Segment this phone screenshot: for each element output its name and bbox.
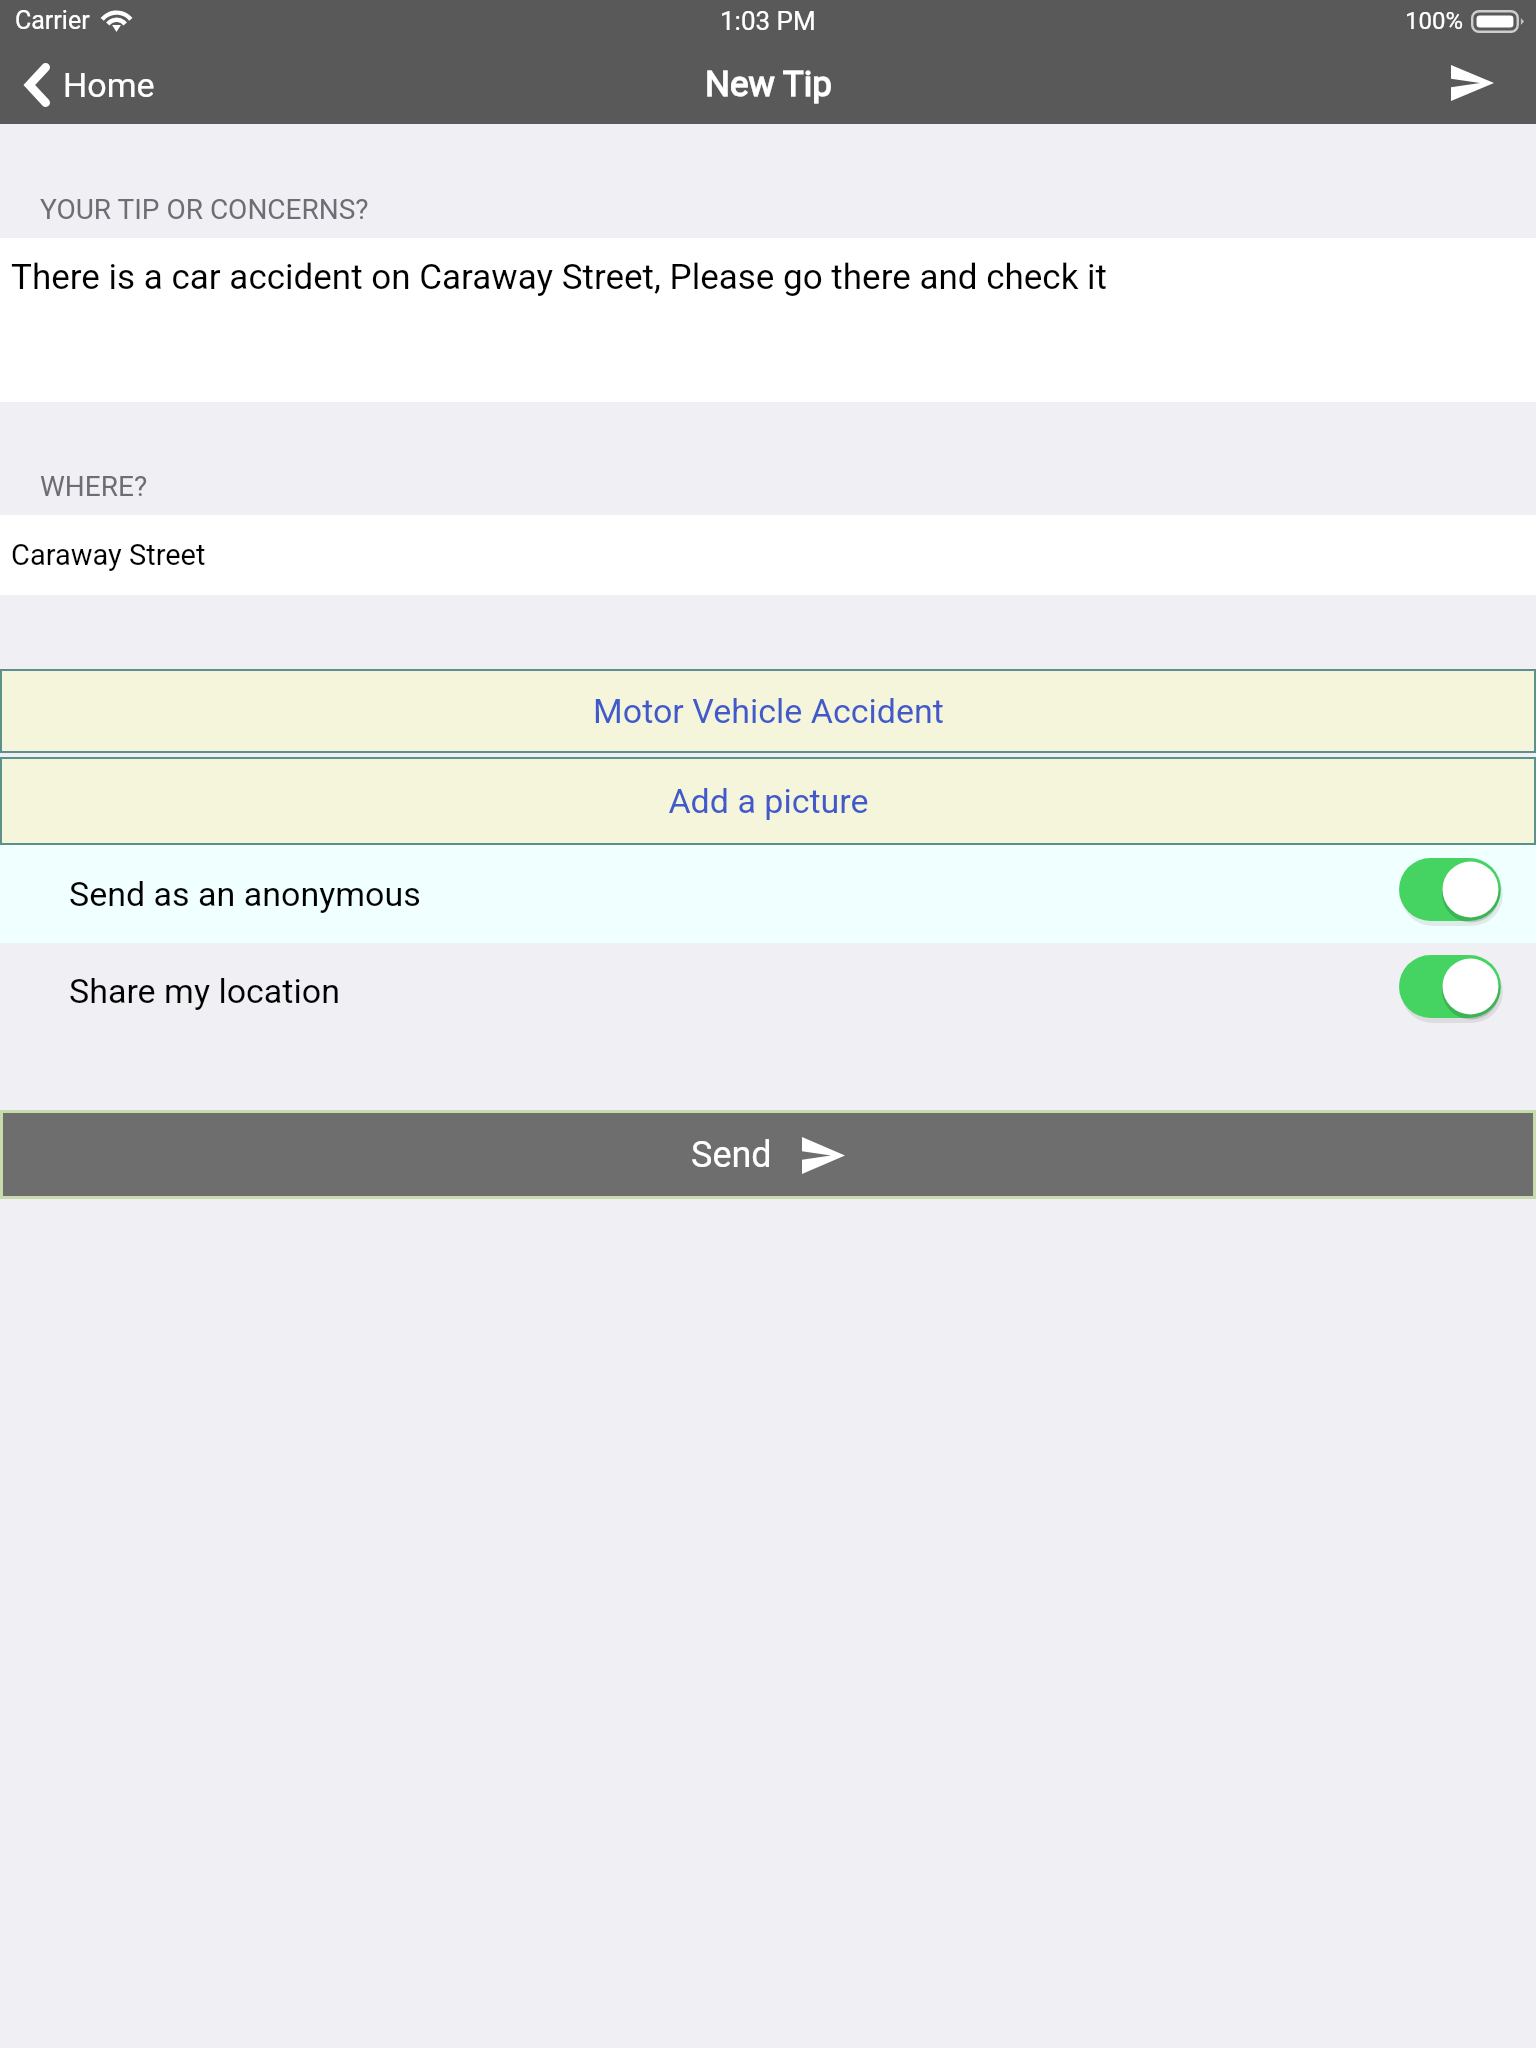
staticText: WHERE? bbox=[40, 470, 148, 503]
staticText: There is a car accident on Caraway Stree… bbox=[11, 257, 1108, 298]
staticText: YOUR TIP OR CONCERNS? bbox=[40, 193, 369, 226]
staticText: 1:03 PM bbox=[720, 6, 816, 36]
staticText: Send as an anonymous bbox=[69, 874, 421, 914]
staticText: Motor Vehicle Accident bbox=[593, 691, 944, 731]
staticText: Carrier bbox=[15, 6, 90, 35]
button[interactable]: Share my location bbox=[0, 943, 1536, 1039]
staticText: Home bbox=[63, 65, 155, 105]
button[interactable]: Send as an anonymous bbox=[0, 845, 1536, 943]
staticText: Caraway Street bbox=[11, 538, 206, 572]
staticText: 100% bbox=[1405, 7, 1464, 35]
staticText: Share my location bbox=[69, 971, 340, 1011]
button[interactable]: Add a picture bbox=[2, 759, 1534, 843]
staticText: Send bbox=[691, 1134, 772, 1176]
button[interactable]: Motor Vehicle Accident bbox=[2, 671, 1534, 751]
staticText: New Tip bbox=[705, 64, 832, 105]
button[interactable]: Send tip bbox=[1425, 51, 1536, 115]
staticText: Add a picture bbox=[668, 781, 869, 821]
button[interactable]: Home bbox=[0, 51, 175, 115]
button[interactable]: Send bbox=[3, 1113, 1533, 1196]
